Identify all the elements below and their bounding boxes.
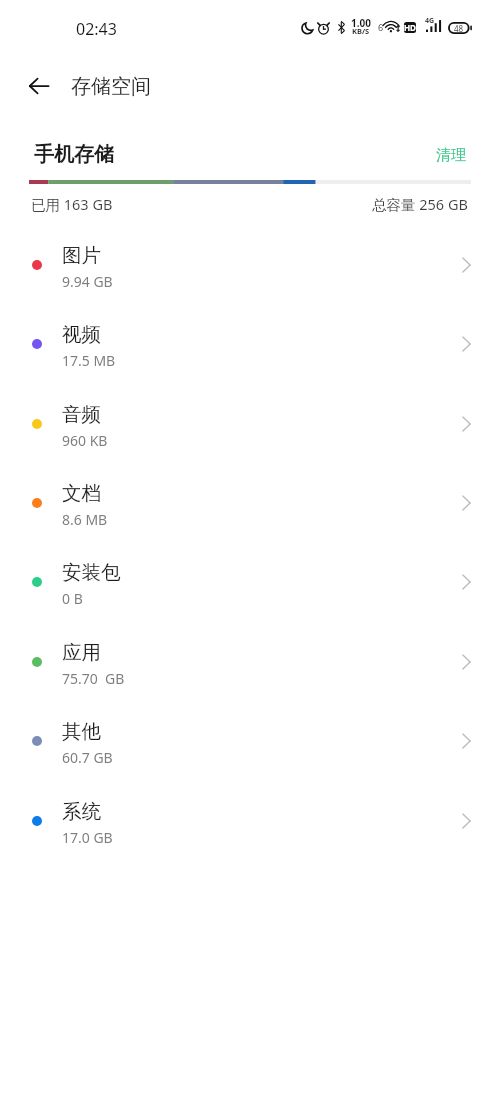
staticText: 清理 [436, 146, 466, 165]
staticText: 手机存储 [34, 142, 114, 167]
staticText: 视频 [62, 322, 101, 347]
staticText: HD [404, 22, 416, 33]
staticText: 其他 [62, 719, 101, 744]
staticText: 17.0 GB [62, 828, 113, 847]
button[interactable]: 安装包 [0, 542, 500, 621]
staticText: 9.94 GB [62, 272, 113, 291]
staticText: 应用 [62, 640, 101, 665]
staticText: 存储空间 [71, 74, 151, 99]
staticText: 0 B [62, 589, 83, 608]
staticText: 安装包 [62, 560, 121, 585]
button[interactable]: 文档 [0, 463, 500, 542]
button[interactable]: 清理 [436, 146, 466, 165]
button[interactable]: 其他 [0, 701, 500, 780]
button[interactable]: 系统 [0, 781, 500, 860]
button[interactable]: 音频 [0, 384, 500, 463]
staticText: 02:43 [76, 18, 117, 40]
staticText: 已用 163 GB [31, 194, 113, 214]
staticText: 75.70 GB [62, 669, 125, 688]
staticText: 8.6 MB [62, 510, 108, 529]
staticText: 文档 [62, 481, 101, 506]
staticText: 图片 [62, 243, 101, 268]
staticText: 17.5 MB [62, 351, 116, 370]
staticText: 音频 [62, 402, 101, 427]
staticText: 960 KB [62, 431, 108, 450]
staticText: 4G [425, 16, 435, 26]
button[interactable]: Back [17, 64, 61, 108]
button[interactable]: 视频 [0, 304, 500, 383]
staticText: 48 [454, 23, 464, 34]
staticText: 系统 [62, 799, 101, 824]
button[interactable]: 图片 [0, 225, 500, 304]
staticText: KB/S [352, 26, 370, 36]
staticText: 总容量 256 GB [372, 194, 468, 214]
button[interactable]: 应用 [0, 622, 500, 701]
staticText: 60.7 GB [62, 748, 113, 767]
staticText: 1.00 [351, 16, 371, 30]
staticText: 6 [378, 21, 384, 33]
